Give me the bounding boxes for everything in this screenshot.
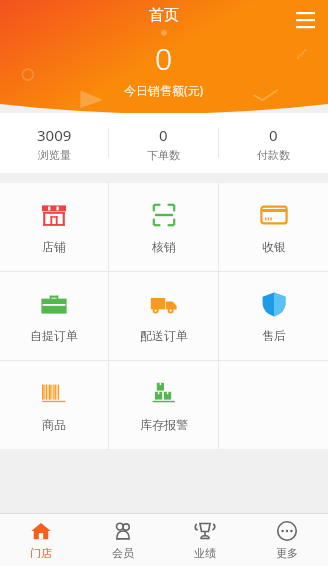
button[interactable]: 核销 (109, 183, 218, 271)
staticText: 自提订单 (30, 328, 78, 343)
staticText: 库存报警 (140, 417, 188, 432)
staticText: 配送订单 (140, 328, 188, 343)
staticText: 更多 (276, 546, 298, 560)
staticText: 售后 (262, 328, 286, 343)
button[interactable]: 收银 (219, 183, 328, 271)
staticText: 店铺 (42, 239, 66, 254)
staticText: 业绩 (194, 546, 216, 560)
button[interactable]: 会员 (82, 514, 164, 566)
button[interactable]: 0 (109, 113, 218, 173)
staticText: 0 (155, 38, 173, 79)
staticText: 付款数 (257, 148, 290, 162)
staticText: 下单数 (147, 148, 180, 162)
staticText: 核销 (152, 239, 176, 254)
staticText: 门店 (30, 546, 52, 560)
button[interactable]: 更多 (246, 514, 328, 566)
staticText: 收银 (262, 239, 286, 254)
staticText: 0 (159, 125, 168, 145)
staticText: 首页 (149, 6, 179, 25)
button[interactable]: 自提订单 (0, 272, 108, 360)
button[interactable]: 业绩 (164, 514, 246, 566)
button[interactable]: 3009 (0, 113, 108, 173)
staticText: 会员 (112, 546, 134, 560)
button[interactable]: Menu (290, 4, 320, 34)
staticText: 浏览量 (38, 148, 71, 162)
staticText: 0 (269, 125, 278, 145)
button[interactable]: 售后 (219, 272, 328, 360)
button[interactable]: 店铺 (0, 183, 108, 271)
staticText: 商品 (42, 417, 66, 432)
button[interactable]: 库存报警 (109, 361, 218, 449)
button[interactable]: 商品 (0, 361, 108, 449)
button[interactable]: 配送订单 (109, 272, 218, 360)
button[interactable]: 门店 (0, 514, 82, 566)
staticText: 3009 (37, 125, 72, 145)
staticText: 今日销售额(元) (124, 82, 204, 98)
button[interactable]: 0 (219, 113, 328, 173)
